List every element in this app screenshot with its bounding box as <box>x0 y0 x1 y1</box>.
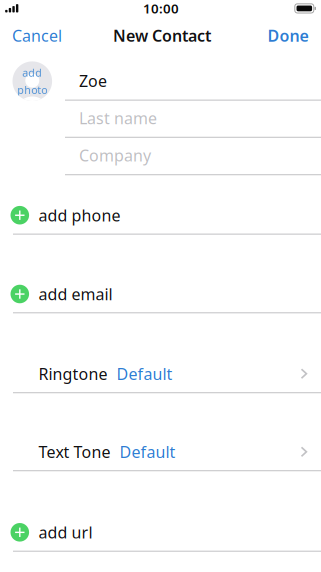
staticText: add phone <box>38 205 120 226</box>
staticText: Last name <box>79 107 157 129</box>
staticText: Text Tone <box>38 441 110 462</box>
staticText: Ringtone <box>38 363 107 384</box>
button[interactable]: Done <box>255 16 320 55</box>
staticText: New Contact <box>113 25 211 46</box>
staticText: add email <box>38 283 112 305</box>
staticText: add url <box>38 522 92 543</box>
button[interactable]: add phone <box>0 196 321 234</box>
staticText: Cancel <box>12 25 62 46</box>
button[interactable]: add url <box>0 514 321 551</box>
staticText: Default <box>116 363 172 384</box>
staticText: Default <box>119 441 175 462</box>
button[interactable]: Ringtone <box>0 355 321 392</box>
button[interactable]: Add photo <box>12 61 52 101</box>
button[interactable]: Text Tone <box>0 433 321 470</box>
staticText: 10:00 <box>143 0 179 17</box>
staticText: Zoe <box>79 70 107 91</box>
button[interactable]: Cancel <box>0 16 75 55</box>
staticText: photo <box>17 83 47 97</box>
staticText: Company <box>79 145 151 166</box>
button[interactable]: add email <box>0 275 321 313</box>
staticText: Done <box>267 25 308 46</box>
staticText: add <box>22 65 42 80</box>
